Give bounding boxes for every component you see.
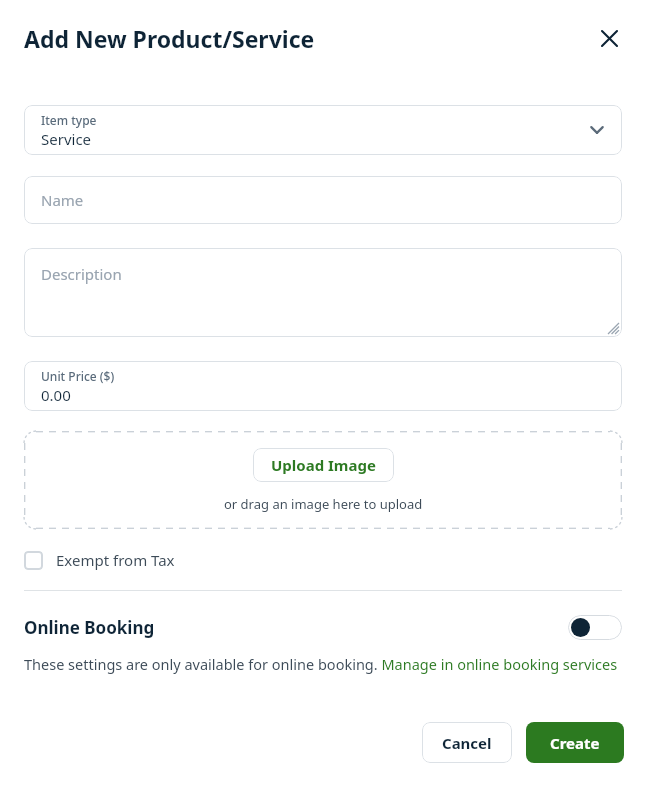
staticText: Create [550, 733, 600, 753]
button[interactable]: Online Booking toggle [568, 615, 622, 640]
staticText: Online Booking [24, 616, 155, 639]
staticText: Item type [41, 112, 97, 128]
staticText: Description [41, 264, 122, 284]
button[interactable]: Cancel [422, 722, 512, 763]
button[interactable]: Exempt from Tax [24, 550, 175, 570]
staticText: Exempt from Tax [56, 550, 175, 570]
staticText: 0.00 [41, 385, 71, 405]
button[interactable]: Upload Image [24, 431, 622, 529]
button[interactable]: Create [526, 722, 624, 763]
button[interactable]: Unit Price ($) [24, 361, 622, 411]
staticText: Unit Price ($) [41, 368, 115, 384]
staticText: Service [41, 129, 92, 149]
staticText: Upload Image [271, 455, 376, 475]
button[interactable]: Close [594, 23, 624, 53]
button[interactable]: These settings are only available for on… [24, 654, 618, 674]
button[interactable]: Upload Image [253, 448, 394, 482]
button[interactable]: Name [24, 176, 622, 224]
staticText: Add New Product/Service [24, 23, 315, 54]
button[interactable]: Description [24, 248, 622, 337]
staticText: Name [41, 190, 84, 210]
staticText: Cancel [442, 733, 492, 753]
staticText: or drag an image here to upload [224, 495, 423, 513]
button[interactable]: Item type [24, 105, 622, 155]
